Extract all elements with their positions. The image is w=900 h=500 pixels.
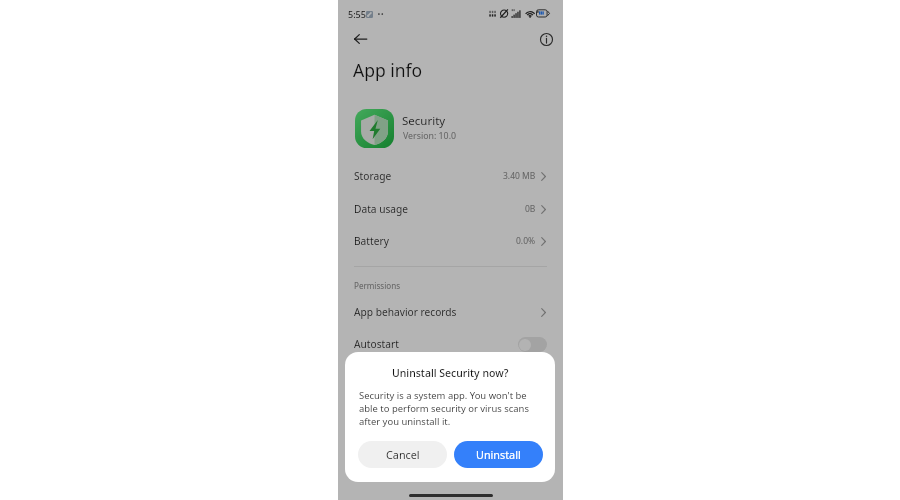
staticText: App info bbox=[353, 58, 423, 82]
staticText: Security bbox=[402, 113, 446, 129]
staticText: App behavior records bbox=[354, 305, 457, 319]
staticText: 0B bbox=[525, 203, 536, 215]
button[interactable]: Autostart bbox=[338, 328, 563, 360]
staticText: Version: 10.0 bbox=[403, 130, 457, 142]
staticText: Autostart bbox=[354, 337, 399, 351]
button[interactable]: Back bbox=[349, 28, 371, 50]
staticText: Storage bbox=[354, 169, 392, 183]
button[interactable]: Data usage bbox=[338, 193, 563, 225]
button[interactable]: Battery bbox=[338, 225, 563, 257]
staticText: Data usage bbox=[354, 202, 409, 216]
button[interactable]: Uninstall bbox=[454, 441, 543, 468]
button[interactable]: Security app icon bbox=[338, 102, 563, 154]
button[interactable]: Autostart toggle, off bbox=[518, 337, 547, 352]
button[interactable]: Cancel bbox=[358, 441, 447, 468]
button[interactable]: App behavior records bbox=[338, 296, 563, 328]
staticText: 0.0% bbox=[516, 235, 536, 247]
button[interactable]: Storage bbox=[338, 160, 563, 192]
other: Security app icon bbox=[355, 109, 394, 148]
staticText: Uninstall Security now? bbox=[392, 366, 509, 380]
staticText: Uninstall bbox=[476, 447, 521, 462]
staticText: Battery bbox=[354, 234, 389, 248]
staticText: Cancel bbox=[386, 447, 420, 462]
staticText: 5:55 bbox=[348, 8, 366, 20]
button[interactable]: About this app bbox=[535, 28, 557, 50]
staticText: 3.40 MB bbox=[503, 170, 536, 182]
staticText: Permissions bbox=[354, 280, 401, 291]
staticText: Security is a system app. You won't be a… bbox=[359, 389, 529, 428]
